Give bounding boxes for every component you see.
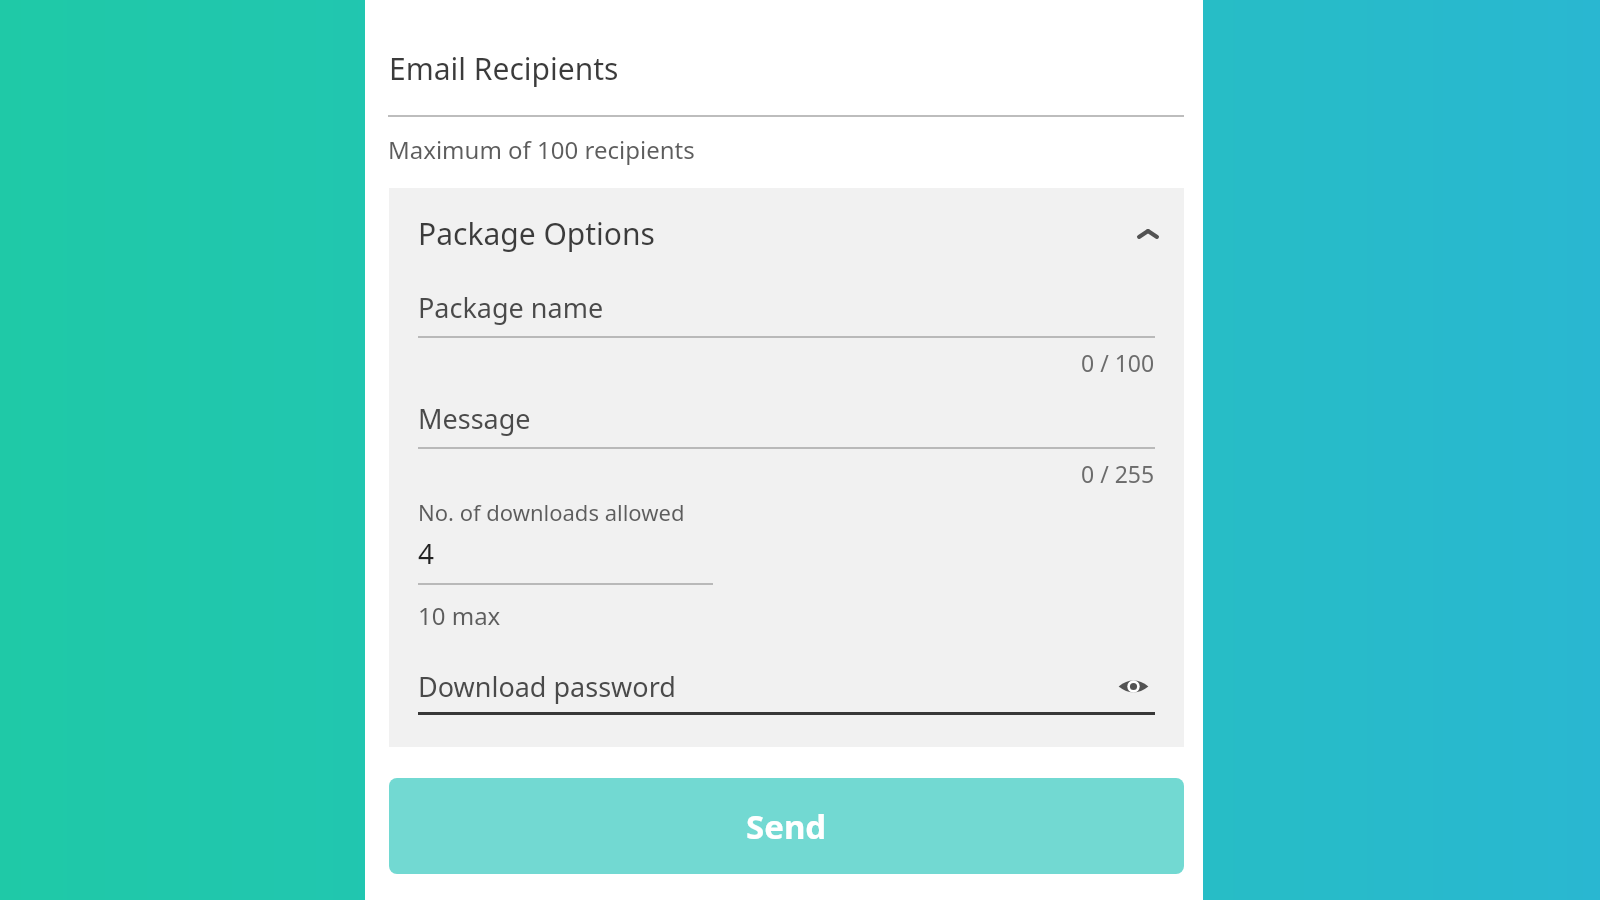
staticText: 0 / 255 — [1081, 458, 1155, 489]
button[interactable]: Send — [389, 778, 1184, 874]
staticText: 0 / 100 — [1081, 347, 1155, 378]
staticText: Package Options — [418, 213, 655, 254]
button[interactable]: Message — [418, 390, 1155, 447]
staticText: Message — [418, 400, 531, 437]
staticText: Send — [746, 804, 827, 849]
other: Collapse Package Options — [1124, 210, 1172, 258]
button[interactable]: Package Options — [389, 188, 1184, 279]
staticText: Package name — [418, 289, 604, 326]
staticText: No. of downloads allowed — [418, 497, 685, 527]
staticText: Email Recipients — [389, 48, 619, 89]
staticText: Download password — [418, 668, 676, 705]
staticText: Maximum of 100 recipients — [388, 133, 695, 166]
staticText: 10 max — [418, 599, 501, 632]
button[interactable]: Download password — [418, 660, 1155, 712]
button[interactable]: Package name — [418, 279, 1155, 336]
button[interactable]: Show password — [1111, 664, 1155, 708]
staticText: 4 — [418, 534, 435, 572]
button[interactable]: No. of downloads allowed — [418, 497, 713, 585]
